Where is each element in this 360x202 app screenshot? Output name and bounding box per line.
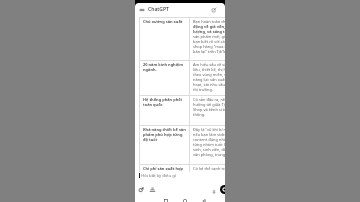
staticText: Am hiểu sâu về vật liệu, thiết kế, thị h…	[193, 62, 225, 92]
staticText: Có lợi thế cạnh tranh	[193, 166, 225, 171]
button[interactable]: Home	[181, 197, 188, 202]
staticText: Hỏi bất kỳ điều gì	[141, 172, 177, 178]
button[interactable]: Menu	[138, 6, 145, 13]
staticText: Đây là "vũ khí bí mật" nếu bạn làm video…	[193, 127, 225, 157]
button[interactable]: Tools	[149, 186, 156, 193]
staticText: ChatGPT	[148, 6, 169, 13]
button[interactable]: Dictate	[210, 188, 217, 195]
staticText: Chi phí sản xuất hợp lý	[143, 166, 187, 172]
staticText: Chủ xưởng sản xuất	[143, 19, 183, 24]
staticText: Hệ thống phân phối toàn quốc	[143, 97, 187, 107]
button[interactable]: Voice mode	[220, 185, 225, 194]
staticText: Khả năng thiết kế sản phẩm phù hợp từng …	[143, 127, 187, 142]
staticText: Bạn hoàn toàn chủ động về giá vốn, chất …	[193, 19, 225, 54]
staticText: 20 năm kinh nghiệm ngành.	[143, 62, 187, 72]
button[interactable]: Recent apps	[162, 197, 169, 202]
button[interactable]: New chat	[210, 6, 217, 13]
button[interactable]: Attach file	[138, 186, 145, 193]
staticText: Có sẵn đầu ra, nên hướng tới giữa TikTok…	[193, 97, 225, 117]
button[interactable]: Back	[200, 197, 207, 202]
